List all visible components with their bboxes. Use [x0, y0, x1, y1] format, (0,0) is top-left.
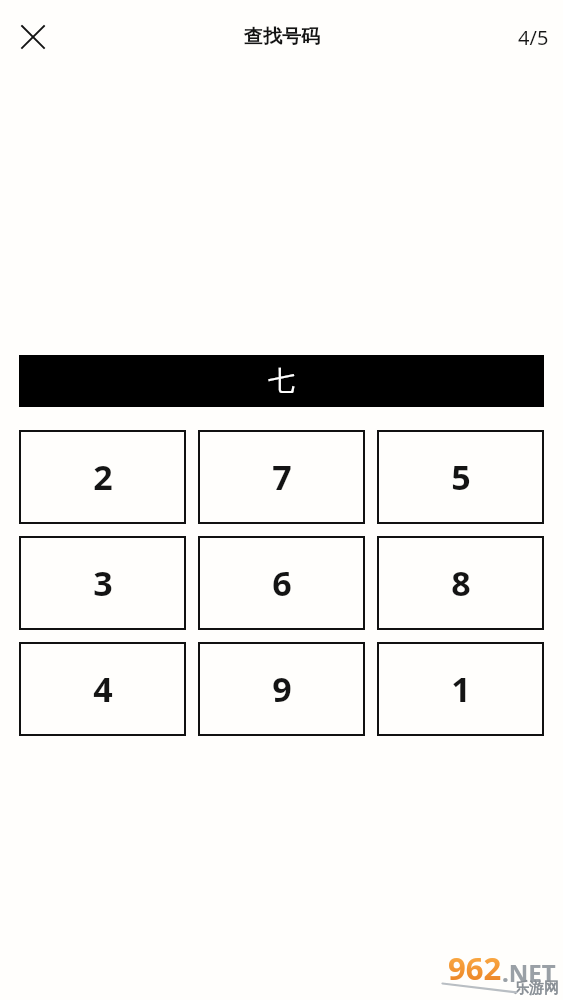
button[interactable]: 3	[19, 536, 186, 630]
button[interactable]: Close	[9, 13, 57, 61]
button[interactable]: 7	[198, 430, 365, 524]
staticText: 3	[93, 560, 113, 606]
staticText: 8	[451, 560, 471, 606]
button[interactable]: 9	[198, 642, 365, 736]
button[interactable]: 8	[377, 536, 544, 630]
button[interactable]: 6	[198, 536, 365, 630]
button[interactable]: 4/5	[518, 24, 549, 51]
button[interactable]: 七	[19, 355, 544, 407]
staticText: 4/5	[518, 24, 549, 51]
staticText: 9	[272, 666, 292, 712]
staticText: 乐游网	[514, 979, 559, 998]
staticText: 1	[451, 666, 471, 712]
button[interactable]: 4	[19, 642, 186, 736]
staticText: 6	[272, 560, 292, 606]
staticText: 查找号码	[244, 25, 320, 49]
button[interactable]: 2	[19, 430, 186, 524]
staticText: 5	[451, 454, 471, 500]
staticText: 2	[93, 454, 113, 500]
staticText: 7	[272, 454, 292, 500]
staticText: 962	[448, 947, 502, 989]
staticText: 4	[93, 666, 113, 712]
staticText: .NET	[502, 956, 556, 989]
button[interactable]: 5	[377, 430, 544, 524]
button[interactable]: 1	[377, 642, 544, 736]
staticText: 七	[268, 364, 295, 398]
